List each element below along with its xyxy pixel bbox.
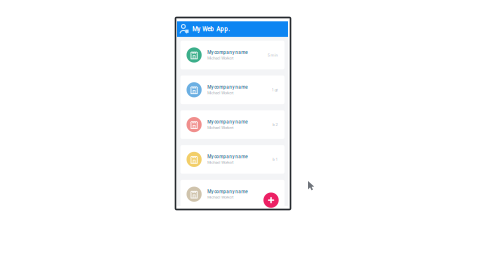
button[interactable]: My company name xyxy=(180,145,284,174)
staticText: My company name xyxy=(207,154,248,159)
staticText: My company name xyxy=(207,84,248,90)
staticText: b 2 xyxy=(272,122,277,127)
button[interactable]: My company name xyxy=(180,110,284,139)
staticText: My company name xyxy=(207,189,248,194)
staticText: 5 min xyxy=(267,52,277,57)
staticText: My company name xyxy=(207,119,248,125)
staticText: Michael Workert xyxy=(207,125,233,130)
staticText: 1 gt xyxy=(271,87,277,92)
button[interactable]: Add xyxy=(263,192,279,208)
staticText: My Web App. xyxy=(192,25,230,33)
button[interactable]: My company name xyxy=(180,180,284,208)
staticText: Michael Workert xyxy=(207,195,233,200)
staticText: Michael Workert xyxy=(207,56,233,60)
button[interactable]: Account xyxy=(177,21,192,37)
staticText: Michael Workert xyxy=(207,160,233,165)
staticText: Michael Workert xyxy=(207,90,233,95)
staticText: b 1 xyxy=(272,157,277,162)
button[interactable]: My company name xyxy=(180,75,284,104)
button[interactable]: My company name xyxy=(180,41,284,69)
staticText: My company name xyxy=(207,50,248,55)
